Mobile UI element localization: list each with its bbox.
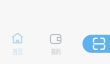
button[interactable]: 我的 [39,31,73,57]
staticText: 首页 [12,48,22,55]
button[interactable]: Scan [82,35,110,53]
staticText: 我的 [51,48,61,55]
button[interactable]: 首页 [0,31,34,57]
